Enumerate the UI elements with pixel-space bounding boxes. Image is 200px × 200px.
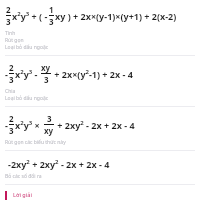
- staticText: Tính: [5, 30, 16, 37]
- staticText: 2: [9, 113, 14, 124]
- button[interactable]: -2xy2 + 2xy2 - 2x + 2x - 4: [8, 158, 195, 170]
- staticText: 3: [44, 74, 49, 85]
- staticText: 3: [49, 16, 54, 27]
- staticText: 3: [47, 113, 52, 124]
- staticText: 1: [49, 4, 54, 15]
- staticText: 3: [9, 74, 14, 85]
- button[interactable]: -: [5, 113, 195, 136]
- staticText: -: [5, 119, 8, 131]
- staticText: + 2x×(y2-1) + 2x - 4: [52, 68, 133, 80]
- staticText: 3: [6, 16, 11, 27]
- staticText: x2y3 -: [15, 68, 40, 80]
- staticText: -2xy2 + 2xy2 - 2x + 2x - 4: [8, 158, 110, 170]
- button[interactable]: -: [5, 62, 195, 85]
- staticText: Rút gọn: [5, 37, 24, 44]
- staticText: 3: [9, 125, 14, 136]
- staticText: Loại bỏ dấu ngoặc: [5, 44, 49, 51]
- staticText: xy: [44, 125, 54, 136]
- staticText: Loại bỏ dấu ngoặc: [5, 95, 49, 102]
- staticText: Chia: [5, 88, 16, 95]
- staticText: 2: [9, 62, 14, 73]
- staticText: Bỏ các số đối ra: [5, 173, 42, 180]
- staticText: x2y3 ×: [15, 119, 43, 131]
- button[interactable]: Lời giải: [5, 191, 195, 200]
- staticText: Rút gọn các biểu thức này: [5, 139, 66, 146]
- staticText: Lời giải: [13, 191, 32, 198]
- staticText: 2: [6, 4, 11, 15]
- staticText: x2y3 + ( -: [12, 10, 48, 22]
- staticText: xy ) + 2x×(y-1)×(y+1) + 2(x-2): [55, 10, 177, 22]
- staticText: -: [5, 68, 8, 80]
- staticText: + 2xy2 - 2x + 2x - 4: [55, 119, 135, 131]
- button[interactable]: 2: [5, 4, 195, 27]
- staticText: xy: [41, 62, 51, 73]
